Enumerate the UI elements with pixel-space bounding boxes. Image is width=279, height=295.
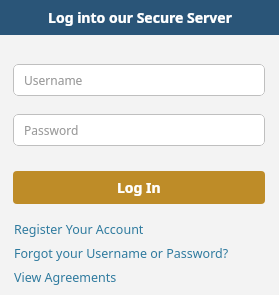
button[interactable]: View Agreements (14, 265, 265, 289)
button[interactable]: Register Your Account (14, 217, 265, 241)
button[interactable]: Forgot your Username or Password? (14, 241, 265, 265)
staticText: View Agreements (14, 269, 117, 286)
staticText: Forgot your Username or Password? (14, 245, 229, 262)
button[interactable]: Username (13, 64, 265, 96)
button[interactable]: Password (13, 114, 265, 146)
button[interactable]: Log In (13, 171, 265, 204)
staticText: Log into our Secure Server (48, 8, 232, 27)
staticText: Register Your Account (14, 221, 144, 238)
staticText: Password (24, 122, 79, 138)
staticText: Log In (117, 178, 161, 197)
staticText: Username (24, 72, 83, 88)
